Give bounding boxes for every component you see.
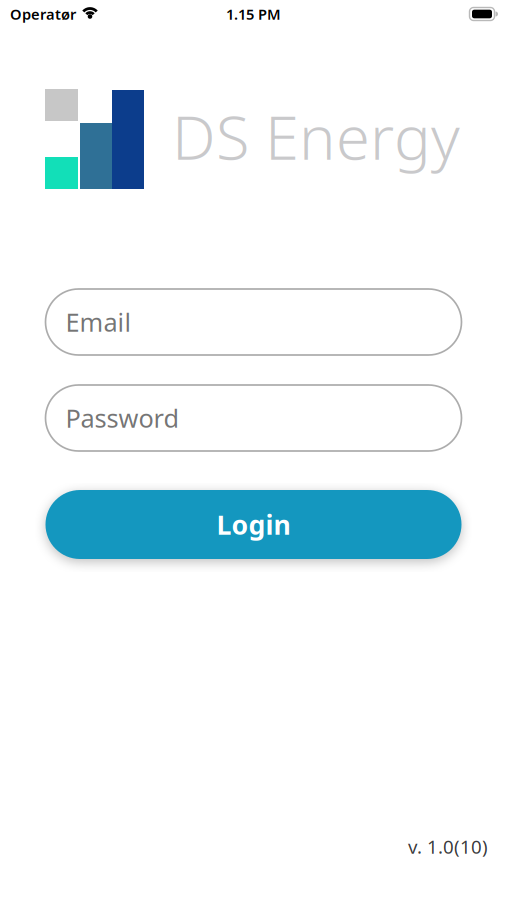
staticText: Login [216, 507, 290, 542]
button[interactable]: Email [45, 289, 461, 355]
button[interactable]: Login [45, 490, 461, 559]
staticText: 1.15 PM [226, 4, 281, 24]
button[interactable]: Password [45, 385, 461, 451]
staticText: Password [65, 401, 179, 435]
staticText: DS Energy [172, 95, 460, 177]
staticText: Operatør [10, 4, 76, 24]
staticText: Email [65, 305, 131, 339]
staticText: v. 1.0(10) [408, 834, 488, 859]
